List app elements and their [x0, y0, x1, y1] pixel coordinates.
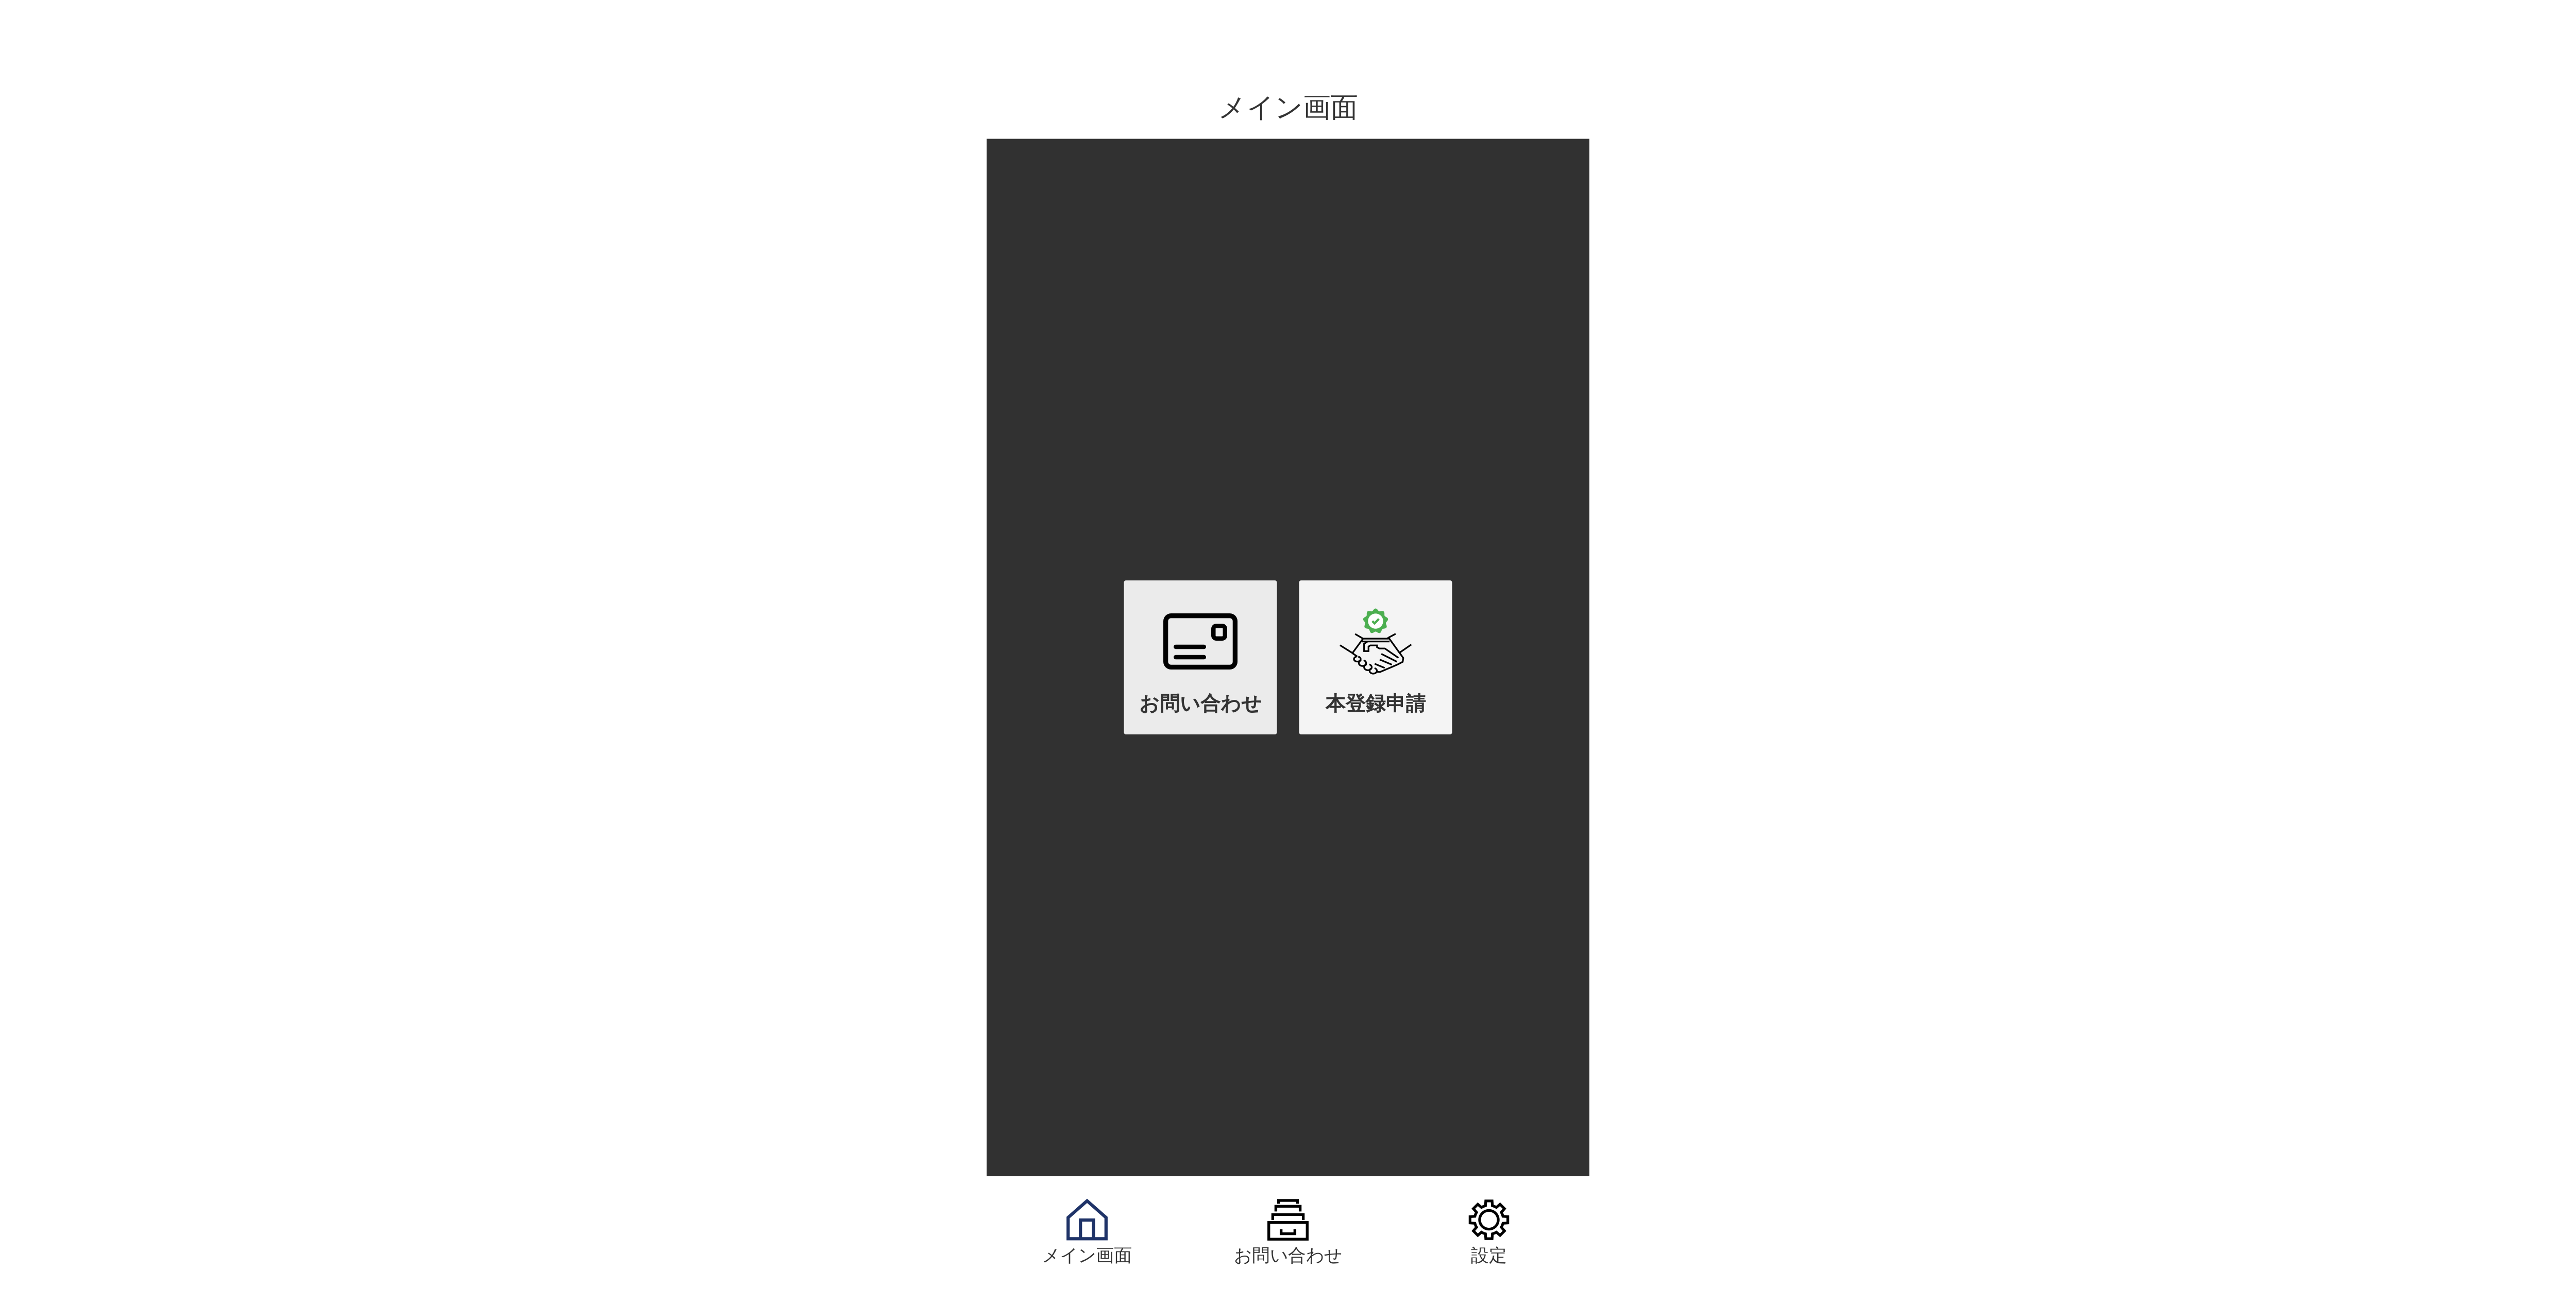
staticText: メイン画面: [1042, 1245, 1132, 1266]
button[interactable]: 本登録申請: [1299, 580, 1452, 734]
staticText: お問い合わせ: [1139, 691, 1262, 716]
button[interactable]: メイン画面: [987, 1199, 1188, 1266]
staticText: 設定: [1471, 1245, 1507, 1266]
button[interactable]: お問い合わせ: [1124, 580, 1277, 734]
button[interactable]: 設定: [1388, 1199, 1589, 1266]
staticText: お問い合わせ: [1234, 1245, 1342, 1266]
staticText: メイン画面: [1218, 91, 1358, 124]
button[interactable]: お問い合わせ: [1188, 1199, 1388, 1266]
staticText: 本登録申請: [1325, 691, 1426, 716]
